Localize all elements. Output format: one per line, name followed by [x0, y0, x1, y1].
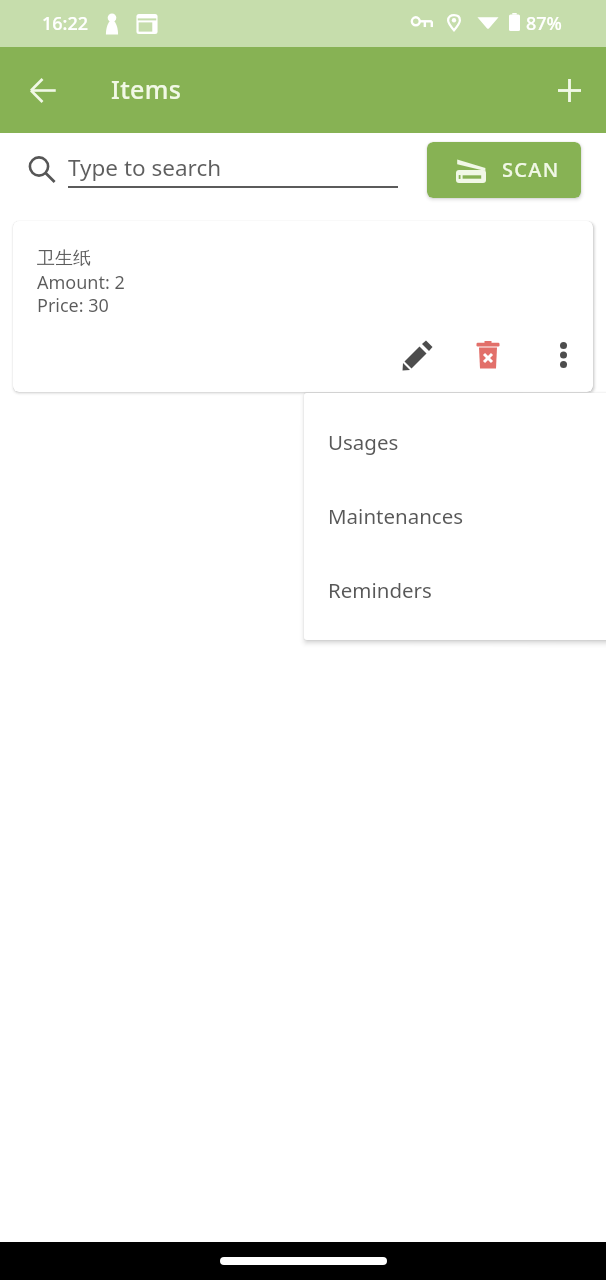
staticText: Reminders	[328, 576, 432, 604]
staticText: Maintenances	[328, 502, 464, 530]
staticText: Type to search	[68, 152, 222, 183]
button[interactable]: Back	[19, 66, 67, 114]
button[interactable]: Usages	[304, 405, 606, 479]
button[interactable]: Maintenances	[304, 479, 606, 553]
staticText: 卫生纸	[37, 247, 91, 270]
button[interactable]: Reminders	[304, 553, 606, 627]
staticText: SCAN	[502, 156, 560, 183]
button[interactable]: Delete	[462, 329, 514, 381]
staticText: Price: 30	[37, 293, 109, 318]
button[interactable]: More options	[537, 329, 589, 381]
button[interactable]: SCAN	[427, 142, 581, 198]
button[interactable]: Type to search	[68, 147, 398, 188]
staticText: Usages	[328, 428, 399, 456]
staticText: 16:22	[42, 11, 89, 36]
staticText: Items	[111, 72, 182, 106]
staticText: 87%	[526, 11, 562, 36]
staticText: Amount: 2	[37, 270, 125, 295]
button[interactable]: Add	[545, 66, 593, 114]
button[interactable]: Edit	[391, 329, 443, 381]
button[interactable]: 卫生纸	[13, 221, 593, 392]
